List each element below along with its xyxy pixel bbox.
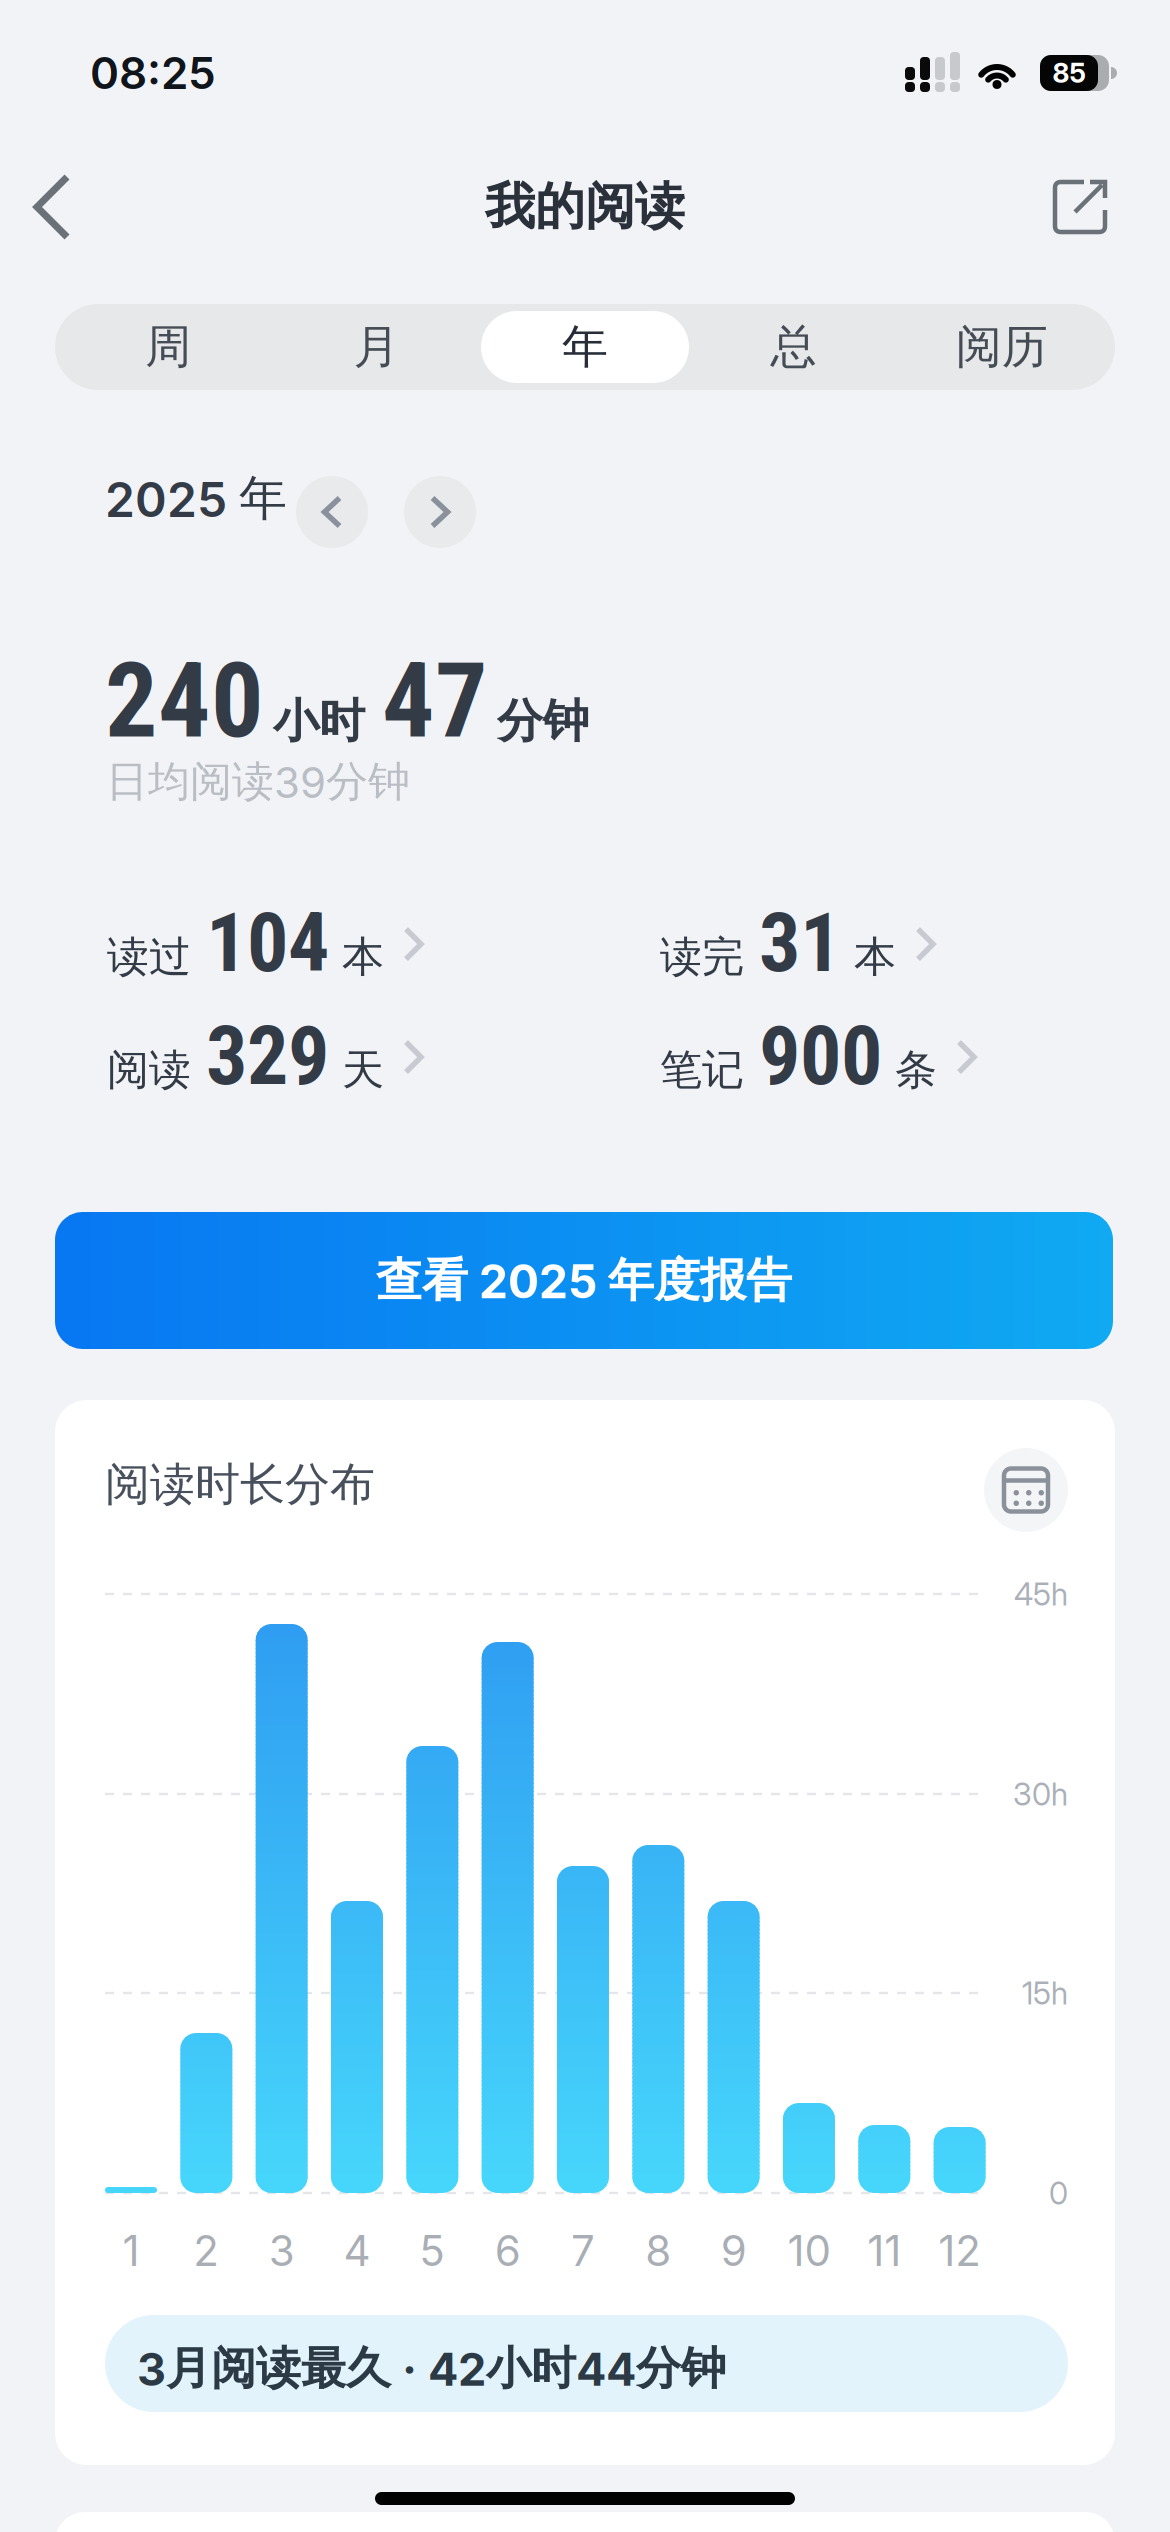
staticText: 阅历 — [956, 319, 1048, 375]
staticText: 104 — [206, 895, 329, 991]
button[interactable]: Calendar view — [984, 1448, 1068, 1532]
button[interactable]: 读完 — [660, 895, 933, 991]
staticText: 读完 — [660, 931, 744, 983]
staticText: 2 — [193, 2226, 219, 2275]
staticText: 总 — [770, 319, 816, 375]
staticText: 30h — [1013, 1776, 1068, 1813]
staticText: 85 — [1052, 57, 1085, 89]
staticText: 阅读时长分布 — [105, 1457, 375, 1512]
staticText: 笔记 — [660, 1044, 744, 1096]
staticText: 15h — [1022, 1975, 1068, 2012]
staticText: 08:25 — [90, 47, 216, 99]
staticText: 本 — [854, 931, 896, 983]
staticText: 我的阅读 — [485, 176, 685, 237]
button[interactable]: 月 — [272, 304, 481, 390]
staticText: 月 — [354, 319, 400, 375]
staticText: 3月阅读最久 · 42小时44分钟 — [137, 2341, 726, 2396]
staticText: 阅读 — [107, 1044, 191, 1096]
staticText: 6 — [495, 2226, 521, 2275]
staticText: 45h — [1014, 1576, 1068, 1613]
staticText: 2025 年 — [105, 469, 287, 528]
button[interactable]: 读过 — [107, 895, 421, 991]
button[interactable]: Share — [1043, 170, 1117, 244]
staticText: 周 — [145, 319, 191, 375]
staticText: 条 — [895, 1044, 937, 1096]
button[interactable]: 年 — [481, 304, 689, 390]
staticText: 查看 2025 年度报告 — [376, 1252, 792, 1309]
staticText: 日均阅读39分钟 — [106, 756, 410, 808]
button[interactable]: 笔记 — [660, 1008, 974, 1104]
staticText: 900 — [759, 1008, 882, 1104]
staticText: 4 — [343, 2226, 370, 2275]
staticText: 9 — [721, 2226, 747, 2275]
staticText: 年 — [562, 319, 608, 375]
button[interactable]: 查看 2025 年度报告 — [55, 1212, 1113, 1349]
button[interactable]: Previous year — [296, 476, 368, 548]
staticText: 小时 — [273, 693, 365, 749]
staticText: 329 — [206, 1008, 329, 1104]
button[interactable]: 总 — [689, 304, 898, 390]
button[interactable]: 阅历 — [898, 304, 1106, 390]
staticText: 读过 — [107, 931, 191, 983]
staticText: 47 — [382, 640, 488, 762]
staticText: 1 — [122, 2226, 139, 2275]
staticText: 5 — [419, 2226, 445, 2275]
staticText: 天 — [342, 1044, 384, 1096]
staticText: 31 — [759, 895, 841, 991]
button[interactable]: 周 — [64, 304, 272, 390]
staticText: 8 — [645, 2226, 671, 2275]
staticText: 11 — [867, 2226, 901, 2275]
staticText: 12 — [938, 2226, 981, 2275]
button[interactable]: 阅读 — [107, 1008, 421, 1104]
staticText: 0 — [1049, 2175, 1068, 2212]
staticText: 240 — [105, 640, 264, 762]
staticText: 7 — [571, 2226, 595, 2275]
staticText: 10 — [787, 2226, 830, 2275]
staticText: 分钟 — [497, 693, 589, 749]
button[interactable]: Next year — [404, 476, 476, 548]
staticText: 3 — [269, 2226, 295, 2275]
staticText: 本 — [342, 931, 384, 983]
button[interactable]: Back — [19, 167, 85, 247]
